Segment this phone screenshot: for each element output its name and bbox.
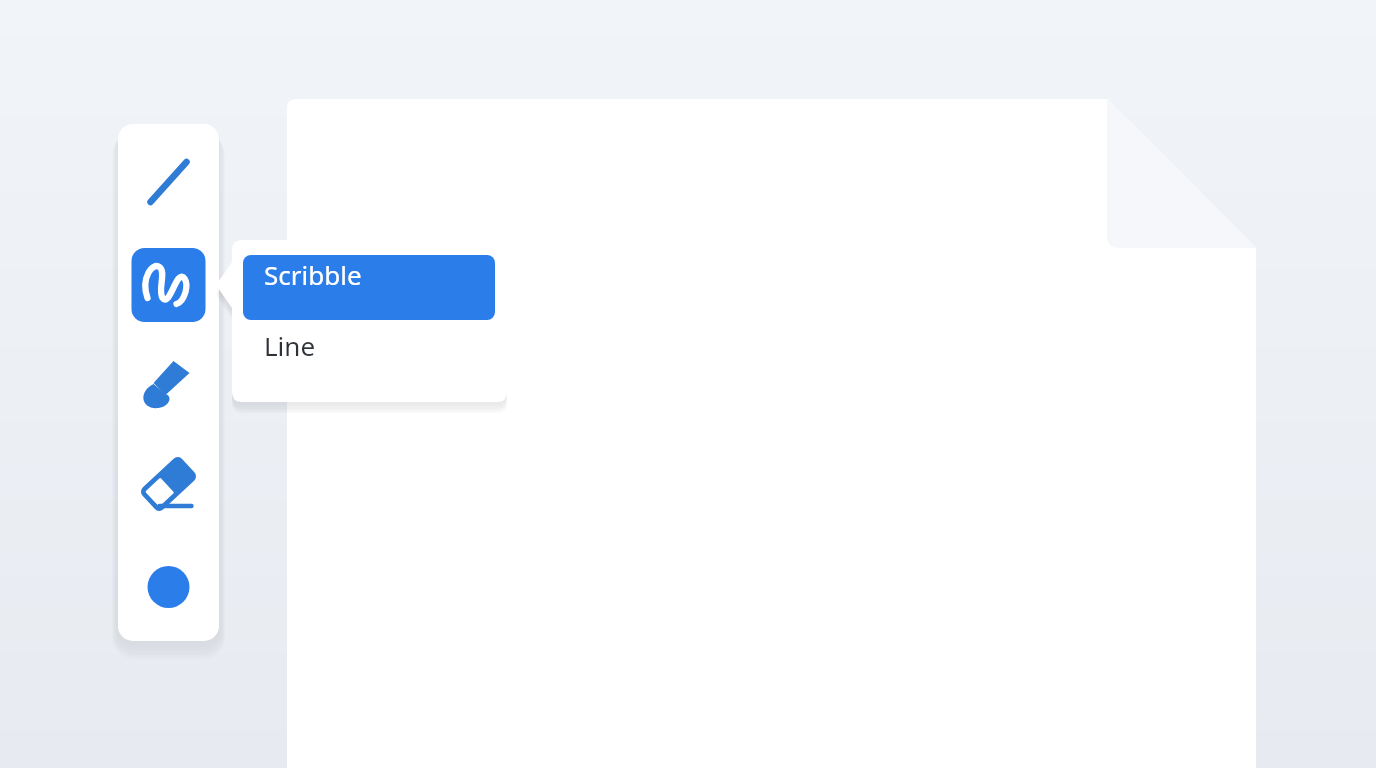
button[interactable]: Color swatch — [118, 538, 219, 638]
staticText: Line — [264, 328, 316, 363]
button[interactable]: Line tool — [118, 132, 219, 233]
button[interactable]: Scribble tool — [118, 234, 219, 335]
button[interactable]: Eraser tool — [118, 438, 219, 538]
button[interactable]: Line — [243, 322, 495, 382]
staticText: Scribble — [264, 257, 362, 292]
button[interactable]: Scribble — [243, 255, 495, 320]
button[interactable]: Brush tool — [118, 336, 219, 436]
